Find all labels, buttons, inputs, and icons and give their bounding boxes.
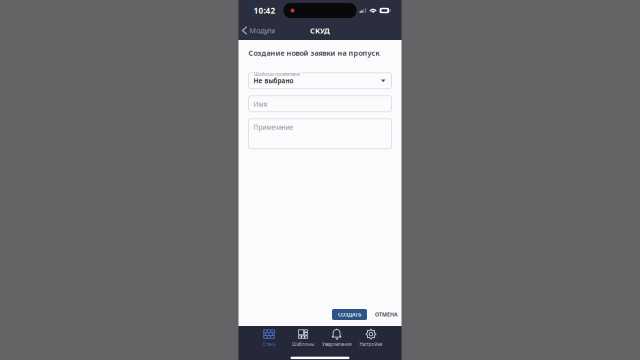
button[interactable]: Модули	[238, 21, 276, 39]
button[interactable]: Примечание	[248, 119, 391, 149]
button[interactable]: Шаблоны	[286, 327, 320, 349]
button[interactable]: ОТМЕНА	[372, 309, 401, 320]
button[interactable]: Уведомления	[320, 327, 354, 349]
staticText: Шаблон посетителя	[254, 71, 300, 77]
button[interactable]: Не выбрано	[248, 73, 391, 89]
staticText: Модули	[249, 25, 276, 35]
button[interactable]: Имя	[248, 96, 391, 112]
staticText: Стена	[263, 341, 275, 347]
staticText: Уведомления	[322, 341, 352, 347]
button[interactable]: Настройки	[354, 327, 388, 349]
button[interactable]: СОЗДАТЬ	[332, 309, 367, 320]
staticText: СКУД	[310, 25, 330, 36]
staticText: 10:42	[253, 5, 275, 16]
staticText: СОЗДАТЬ	[338, 311, 361, 318]
staticText: Имя	[253, 100, 267, 108]
staticText: Создание новой заявки на пропуск	[248, 48, 379, 58]
staticText: Примечание	[253, 123, 292, 131]
staticText: Не выбрано	[253, 76, 293, 85]
staticText: Шаблоны	[292, 341, 314, 347]
staticText: Настройки	[359, 341, 382, 347]
button[interactable]: Стена	[252, 327, 286, 349]
staticText: ОТМЕНА	[375, 311, 398, 318]
